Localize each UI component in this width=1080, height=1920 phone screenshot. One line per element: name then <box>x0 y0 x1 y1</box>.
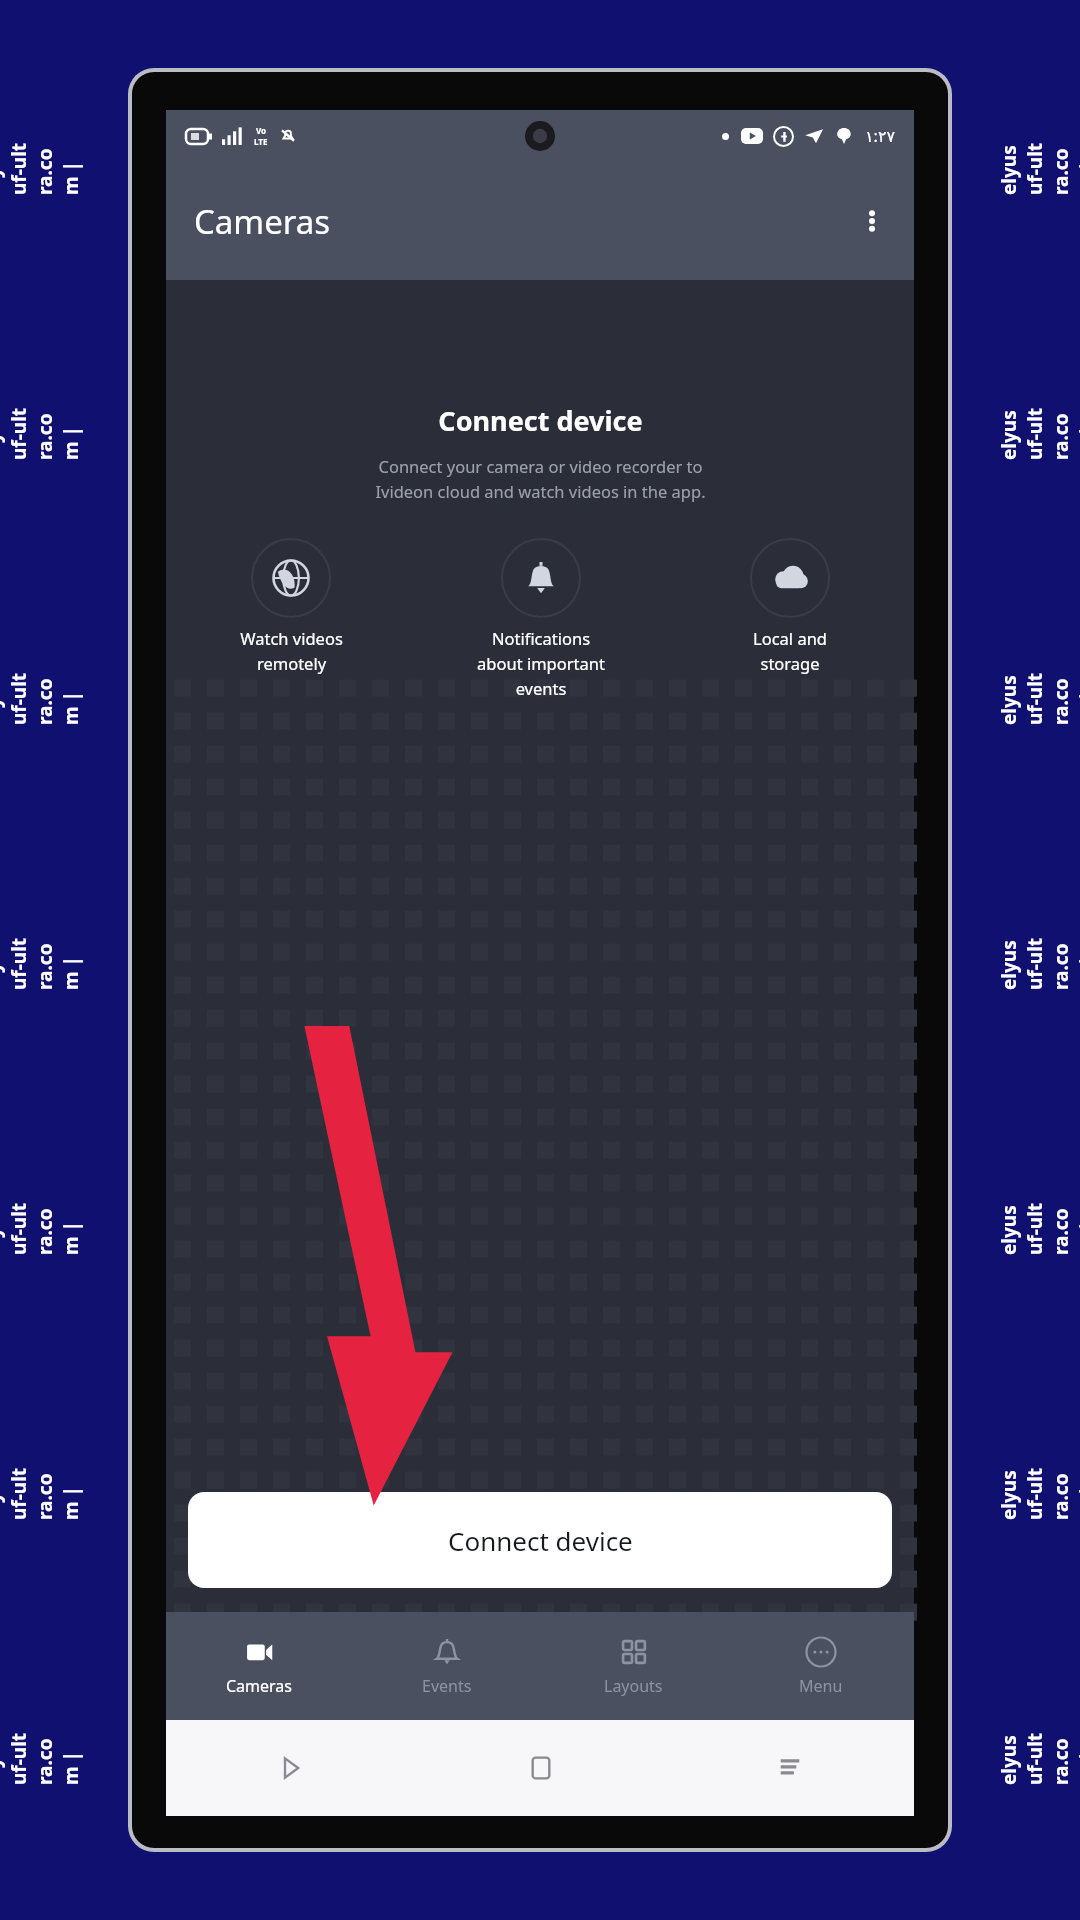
staticText: Connect your camera or video recorder to… <box>375 455 706 503</box>
staticText: LTE <box>254 136 268 147</box>
button[interactable]: Menu <box>727 1612 914 1720</box>
button[interactable]: Recents <box>665 1720 914 1816</box>
staticText: elyusuf-ultra.com | <box>996 930 1080 990</box>
staticText: elyusuf-ultra.com | <box>996 1195 1080 1255</box>
staticText: elyusuf-ultra.com | <box>996 1460 1080 1520</box>
staticText: Notifications about important events <box>477 627 605 699</box>
staticText: Events <box>422 1675 472 1697</box>
staticText: elyusuf-ultra.com | <box>0 1460 84 1520</box>
staticText: Cameras <box>226 1675 293 1697</box>
button[interactable]: Back <box>166 1720 416 1816</box>
button[interactable]: Local and storage <box>665 537 914 674</box>
staticText: elyusuf-ultra.com | <box>996 1725 1080 1785</box>
button[interactable]: Connect device <box>188 1492 892 1588</box>
button[interactable]: Cameras <box>166 1612 353 1720</box>
button[interactable]: Home <box>416 1720 665 1816</box>
staticText: Menu <box>799 1675 843 1697</box>
staticText: elyusuf-ultra.com | <box>996 665 1080 725</box>
staticText: elyusuf-ultra.com | <box>0 1725 84 1785</box>
staticText: elyusuf-ultra.com | <box>0 665 84 725</box>
staticText: elyusuf-ultra.com | <box>0 1195 84 1255</box>
staticText: Vo <box>256 125 267 136</box>
staticText: Connect device <box>438 402 643 439</box>
staticText: Connect device <box>448 1523 633 1558</box>
button[interactable]: Notifications about important events <box>416 537 665 699</box>
staticText: Watch videos remotely <box>240 627 343 674</box>
button[interactable]: Watch videos remotely <box>166 537 416 674</box>
button[interactable]: Events <box>353 1612 540 1720</box>
staticText: elyusuf-ultra.com | <box>0 135 84 195</box>
staticText: Local and storage <box>753 627 827 674</box>
staticText: Cameras <box>194 199 331 244</box>
button[interactable]: Layouts <box>540 1612 727 1720</box>
staticText: elyusuf-ultra.com | <box>996 400 1080 460</box>
staticText: elyusuf-ultra.com | <box>0 930 84 990</box>
staticText: elyusuf-ultra.com | <box>996 135 1080 195</box>
staticText: elyusuf-ultra.com | <box>0 400 84 460</box>
button[interactable]: More options <box>844 193 900 249</box>
staticText: ١:٢٧ <box>865 125 896 147</box>
staticText: Layouts <box>604 1675 663 1697</box>
